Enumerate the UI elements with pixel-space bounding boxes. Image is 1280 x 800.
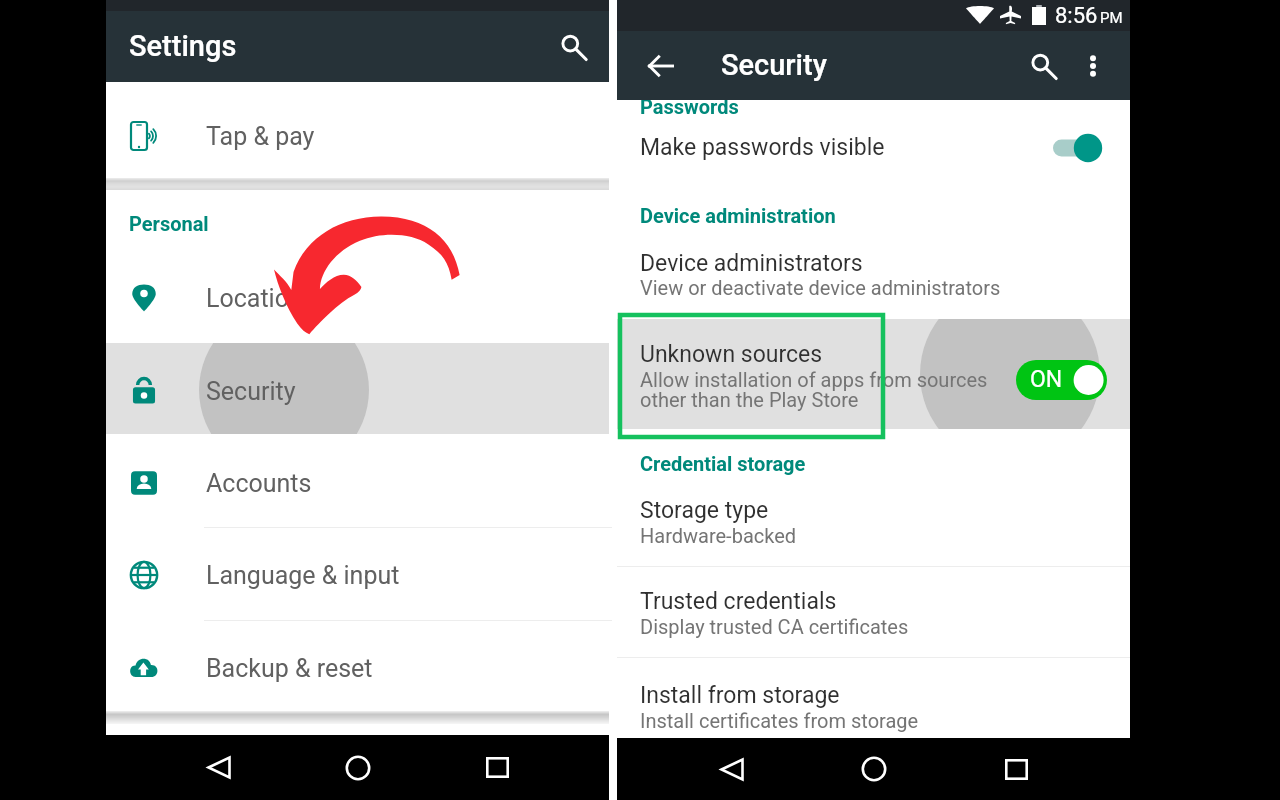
button[interactable]: Device administrators (617, 235, 1130, 310)
staticText: 8:56 (1055, 3, 1098, 29)
staticText: Security (206, 377, 296, 406)
staticText: Backup & reset (206, 654, 373, 683)
staticText: Install certificates from storage (640, 709, 919, 732)
staticText: Storage type (640, 497, 769, 524)
button[interactable]: Recents (474, 735, 520, 800)
staticText: Personal (129, 212, 209, 235)
button[interactable]: Location (106, 253, 609, 343)
staticText: View or deactivate device administrators (640, 276, 1001, 299)
button[interactable]: ON (1016, 360, 1107, 400)
staticText: Language & input (206, 561, 400, 590)
staticText: Accounts (206, 469, 312, 498)
button[interactable]: Home (851, 738, 897, 800)
staticText: Install from storage (640, 682, 840, 709)
staticText: Location (206, 284, 303, 313)
button[interactable]: Unknown sources (617, 319, 1130, 429)
button[interactable]: Back (637, 42, 685, 90)
staticText: Make passwords visible (640, 134, 885, 161)
staticText: other than the Play Store (640, 388, 859, 411)
button[interactable]: Accounts (106, 434, 609, 526)
staticText: PM (1100, 9, 1123, 27)
staticText: Tap & pay (206, 122, 315, 151)
button[interactable]: Search (549, 23, 597, 71)
staticText: Credential storage (640, 452, 806, 475)
staticText: Device administrators (640, 250, 863, 277)
staticText: Security (721, 48, 827, 82)
button[interactable]: Security (106, 343, 609, 434)
button[interactable]: Install from storage (617, 658, 1130, 738)
staticText: Allow installation of apps from sources (640, 368, 988, 391)
staticText: Settings (129, 29, 237, 63)
button[interactable] (1043, 130, 1105, 166)
button[interactable]: Home (335, 735, 381, 800)
button[interactable]: Search (1019, 42, 1067, 90)
button[interactable]: Language & input (106, 527, 609, 619)
staticText: Hardware-backed (640, 524, 797, 547)
staticText: ON (1030, 366, 1063, 393)
staticText: Passwords (640, 95, 739, 118)
staticText: Unknown sources (640, 341, 823, 368)
button[interactable]: Make passwords visible (617, 118, 1130, 180)
button[interactable]: Backup & reset (106, 619, 609, 711)
staticText: Trusted credentials (640, 588, 837, 615)
button[interactable]: Back (196, 735, 242, 800)
button[interactable]: Storage type (617, 484, 1130, 565)
button[interactable]: Back (709, 738, 755, 800)
button[interactable]: Recents (993, 738, 1039, 800)
button[interactable]: More options (1069, 42, 1117, 90)
staticText: Device administration (640, 204, 836, 227)
button[interactable]: Trusted credentials (617, 566, 1130, 657)
staticText: Display trusted CA certificates (640, 615, 909, 638)
button[interactable]: Tap & pay (106, 93, 609, 178)
